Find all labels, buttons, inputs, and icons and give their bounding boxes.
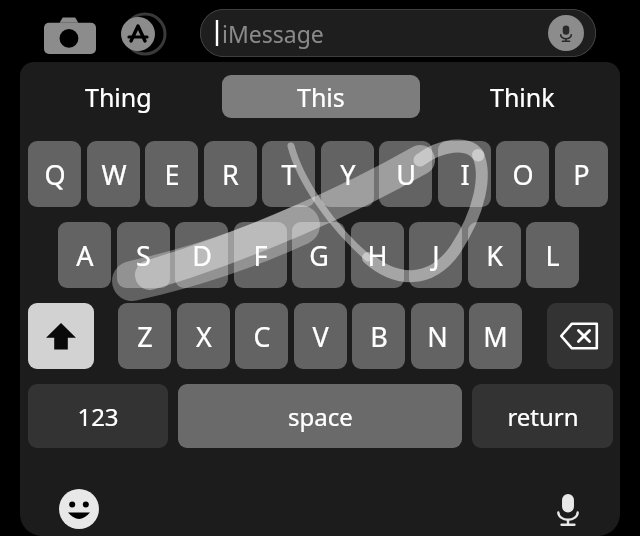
staticText: Q <box>44 156 66 193</box>
button[interactable]: This <box>222 75 420 118</box>
button[interactable]: App Store <box>120 12 168 56</box>
staticText: O <box>512 156 534 193</box>
staticText: X <box>196 318 212 355</box>
button[interactable]: U <box>379 141 432 207</box>
button[interactable]: Shift <box>28 303 94 369</box>
staticText: H <box>367 237 388 274</box>
staticText: D <box>192 237 212 274</box>
button[interactable]: Q <box>28 141 81 207</box>
staticText: P <box>573 156 590 193</box>
button[interactable]: K <box>468 222 521 288</box>
button[interactable]: Backspace <box>547 303 613 369</box>
button[interactable]: Think <box>452 75 592 118</box>
staticText: M <box>483 318 508 355</box>
staticText: Thing <box>85 80 152 114</box>
button[interactable]: F <box>234 222 287 288</box>
staticText: F <box>253 237 268 274</box>
staticText: T <box>281 156 297 193</box>
button[interactable]: H <box>351 222 404 288</box>
button[interactable]: L <box>526 222 579 288</box>
button[interactable]: X <box>177 303 230 369</box>
button[interactable]: Dictate <box>548 15 584 51</box>
button[interactable]: N <box>411 303 464 369</box>
button[interactable]: Emoji <box>58 488 100 530</box>
button[interactable]: return <box>472 384 613 448</box>
button[interactable]: Voice input <box>545 484 591 534</box>
button[interactable]: B <box>352 303 405 369</box>
button[interactable]: Y <box>321 141 374 207</box>
staticText: S <box>136 237 151 274</box>
button[interactable]: G <box>292 222 345 288</box>
button[interactable]: D <box>175 222 228 288</box>
button[interactable]: iMessage <box>200 9 596 57</box>
button[interactable]: I <box>438 141 491 207</box>
button[interactable]: M <box>469 303 522 369</box>
button[interactable]: W <box>87 141 140 207</box>
staticText: This <box>297 80 345 114</box>
button[interactable]: P <box>555 141 608 207</box>
staticText: Think <box>490 80 555 114</box>
staticText: I <box>460 156 470 193</box>
button[interactable]: space <box>178 384 462 448</box>
staticText: C <box>253 318 271 355</box>
button[interactable]: Thing <box>48 75 188 118</box>
staticText: R <box>222 156 239 193</box>
staticText: V <box>312 318 329 355</box>
staticText: L <box>545 237 560 274</box>
button[interactable]: J <box>409 222 462 288</box>
staticText: U <box>396 156 416 193</box>
staticText: return <box>507 400 579 433</box>
staticText: J <box>432 237 440 274</box>
button[interactable]: T <box>262 141 315 207</box>
button[interactable]: Camera <box>44 14 96 54</box>
staticText: iMessage <box>222 18 324 49</box>
staticText: A <box>76 237 94 274</box>
staticText: Z <box>137 318 153 355</box>
staticText: G <box>309 237 329 274</box>
button[interactable]: A <box>58 222 111 288</box>
staticText: E <box>164 156 180 193</box>
button[interactable]: Z <box>118 303 171 369</box>
staticText: B <box>370 318 388 355</box>
staticText: N <box>427 318 448 355</box>
button[interactable]: E <box>145 141 198 207</box>
button[interactable]: O <box>496 141 549 207</box>
button[interactable]: V <box>294 303 347 369</box>
button[interactable]: 123 <box>28 384 168 448</box>
staticText: K <box>486 237 503 274</box>
button[interactable]: S <box>117 222 170 288</box>
staticText: 123 <box>77 400 119 433</box>
staticText: W <box>101 156 127 193</box>
staticText: space <box>288 400 353 433</box>
button[interactable]: C <box>235 303 288 369</box>
staticText: Y <box>340 156 356 193</box>
button[interactable]: R <box>204 141 257 207</box>
